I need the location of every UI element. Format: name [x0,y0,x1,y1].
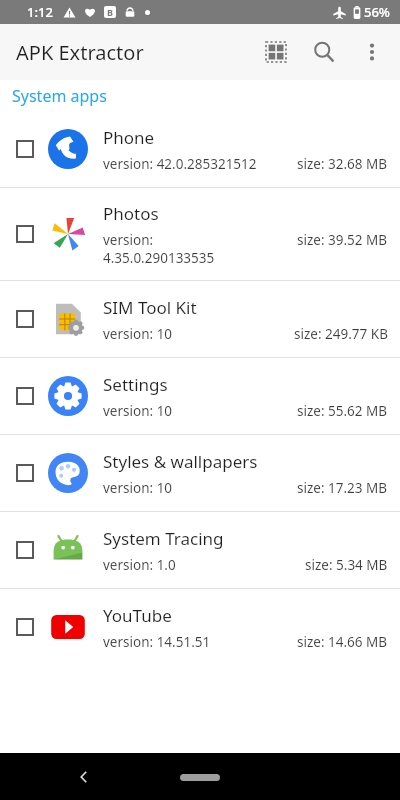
staticText: Settings [103,373,168,396]
staticText: size: 32.68 MB [297,155,388,173]
staticText: Phone [103,126,155,149]
staticText: 56% [364,3,390,21]
button[interactable]: Back [68,761,100,793]
staticText: size: 17.23 MB [297,479,388,497]
staticText: version: 42.0.285321512 [103,155,257,173]
staticText: System Tracing [103,527,224,550]
button[interactable]: Select Settings [16,387,34,405]
button[interactable]: Select Settings [0,358,400,434]
staticText: size: 55.62 MB [297,402,388,420]
button[interactable]: Search [300,28,348,76]
staticText: version: 10 [103,479,173,497]
button[interactable]: Select SIM Tool Kit [16,310,34,328]
staticText: Photos [103,202,159,225]
button[interactable]: Select Photos [16,225,34,243]
staticText: size: 14.66 MB [297,633,388,651]
staticText: version: 10 [103,325,173,343]
staticText: version: 1.0 [103,556,176,574]
button[interactable]: Select YouTube [0,589,400,665]
staticText: YouTube [103,604,172,627]
button[interactable]: Select YouTube [16,618,34,636]
staticText: version: 10 [103,402,173,420]
button[interactable]: Select Styles & wallpapers [16,464,34,482]
button[interactable]: Select Styles & wallpapers [0,435,400,511]
staticText: System apps [12,85,107,107]
button[interactable]: Select System Tracing [0,512,400,588]
staticText: size: 5.34 MB [305,556,388,574]
button[interactable]: Select Photos [0,188,400,280]
button[interactable]: More options [348,28,396,76]
staticText: APK Extractor [16,39,144,66]
staticText: SIM Tool Kit [103,296,197,319]
staticText: Styles & wallpapers [103,450,258,473]
staticText: size: 39.52 MB [297,231,388,249]
staticText: version: 4.35.0.290133535 [103,231,215,267]
button[interactable]: Grid view [252,28,300,76]
button[interactable]: Select Phone [16,140,34,158]
button[interactable]: Home [170,766,230,788]
button[interactable]: Select SIM Tool Kit [0,281,400,357]
button[interactable]: Select Phone [0,111,400,187]
staticText: B [107,6,113,18]
staticText: 1:12 [27,3,53,21]
button[interactable]: Select System Tracing [16,541,34,559]
staticText: size: 249.77 KB [294,325,388,343]
staticText: version: 14.51.51 [103,633,211,651]
